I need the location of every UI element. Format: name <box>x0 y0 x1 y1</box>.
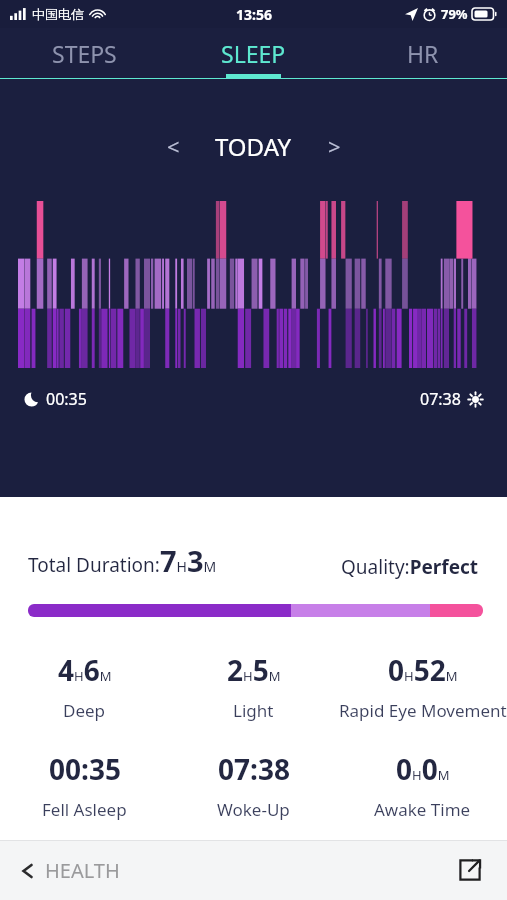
staticText: 0H52M <box>388 651 458 689</box>
button[interactable]: 0H0M <box>338 750 507 821</box>
button[interactable]: 4H6M <box>0 651 169 722</box>
staticText: HR <box>407 38 439 69</box>
button[interactable]: HEALTH <box>20 857 120 884</box>
button[interactable]: Previous day <box>153 126 193 166</box>
staticText: 4H6M <box>58 651 112 689</box>
staticText: < <box>167 131 180 161</box>
staticText: 0H0M <box>396 750 450 788</box>
button[interactable]: STEPS <box>0 28 169 79</box>
staticText: 2H5M <box>227 651 281 689</box>
staticText: 中国电信 <box>32 6 84 22</box>
button[interactable]: 2H5M <box>169 651 338 722</box>
staticText: Woke-Up <box>217 798 290 821</box>
staticText: TODAY <box>215 130 292 163</box>
button[interactable]: HR <box>338 28 507 79</box>
staticText: Awake Time <box>374 798 471 821</box>
staticText: 00:35 <box>49 750 121 788</box>
staticText: SLEEP <box>221 38 286 69</box>
staticText: Total Duration:7H3M <box>28 541 217 580</box>
staticText: HEALTH <box>45 857 120 884</box>
button[interactable]: 0H52M <box>338 651 507 722</box>
staticText: 07:38 <box>420 388 461 410</box>
staticText: Rapid Eye Movement <box>339 699 507 722</box>
button[interactable]: Open in app <box>453 853 487 887</box>
staticText: Light <box>233 699 274 722</box>
staticText: 79% <box>441 5 468 23</box>
staticText: Deep <box>63 699 106 722</box>
button[interactable]: 00:35 <box>0 750 169 821</box>
staticText: 13:56 <box>236 5 272 24</box>
staticText: 07:38 <box>218 750 290 788</box>
staticText: Fell Asleep <box>42 798 127 821</box>
button[interactable]: Next day <box>314 126 354 166</box>
staticText: > <box>328 131 341 161</box>
button[interactable]: 07:38 <box>169 750 338 821</box>
staticText: STEPS <box>52 38 117 69</box>
staticText: 00:35 <box>46 388 87 410</box>
staticText: Quality:Perfect <box>341 554 479 580</box>
button[interactable]: SLEEP <box>169 28 338 79</box>
